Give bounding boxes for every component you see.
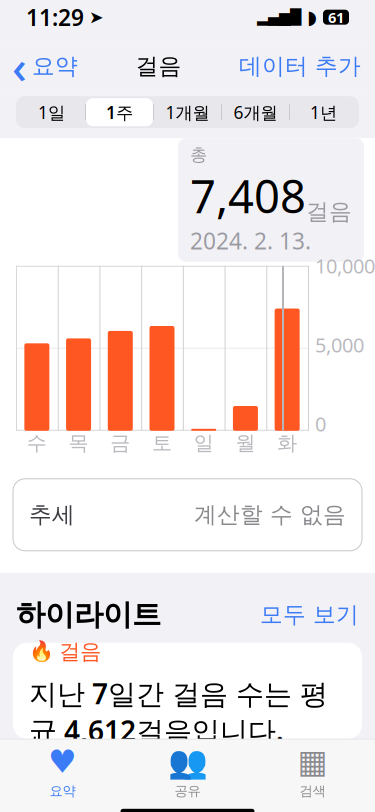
staticText: 5,000	[315, 331, 364, 358]
button[interactable]: 👥	[125, 747, 250, 795]
staticText: 요약	[49, 783, 75, 799]
staticText: 요약	[32, 52, 78, 80]
staticText: 검색	[299, 783, 325, 799]
button[interactable]: 🔥	[13, 643, 362, 739]
button[interactable]: 1주	[86, 98, 153, 126]
staticText: 👥	[167, 743, 207, 780]
staticText: 6개월	[233, 101, 277, 124]
staticText: 걸음	[135, 52, 181, 80]
staticText: 11:29	[26, 2, 84, 32]
staticText: 금	[110, 431, 130, 455]
staticText: 모두 보기	[260, 601, 359, 629]
staticText: 10,000	[315, 252, 375, 279]
staticText: 계산할 수 없음	[194, 501, 346, 529]
button[interactable]: ▦	[250, 747, 375, 795]
staticText: 추세	[29, 501, 75, 529]
button[interactable]: 모두 보기	[260, 601, 359, 629]
staticText: 2024. 2. 13.	[190, 226, 311, 256]
staticText: 1년	[310, 101, 337, 124]
staticText: 일	[194, 431, 214, 455]
button[interactable]: 1개월	[154, 98, 221, 126]
staticText: 토	[152, 431, 172, 455]
staticText: 61	[328, 7, 344, 27]
button[interactable]: ♥	[0, 747, 125, 795]
button[interactable]: 추세	[13, 479, 362, 551]
staticText: 7,408	[190, 165, 306, 226]
staticText: 수	[27, 431, 47, 455]
button[interactable]: 6개월	[222, 98, 289, 126]
button[interactable]: 1년	[290, 98, 357, 126]
staticText: 0	[315, 410, 326, 437]
staticText: ♥	[48, 743, 77, 780]
button[interactable]: 1일	[18, 98, 85, 126]
button[interactable]: 데이터 추가	[239, 46, 375, 86]
staticText: 걸음	[59, 638, 101, 665]
staticText: 1일	[38, 101, 65, 124]
button[interactable]: ‹	[0, 30, 78, 102]
staticText: 🔥	[29, 640, 54, 663]
staticText: ▂▄▆█	[257, 9, 301, 25]
staticText: ▦	[297, 743, 327, 780]
staticText: ‹	[12, 36, 27, 96]
staticText: 1주	[106, 101, 133, 124]
staticText: 총	[190, 144, 207, 165]
staticText: ◗	[307, 7, 317, 28]
staticText: 걸음	[306, 198, 352, 226]
staticText: ➤	[89, 7, 104, 27]
staticText: 하이라이트	[16, 597, 161, 633]
staticText: 화	[277, 431, 297, 455]
staticText: 데이터 추가	[239, 52, 361, 80]
staticText: 1개월	[165, 101, 209, 124]
staticText: 월	[235, 431, 255, 455]
staticText: 공유	[174, 783, 200, 799]
staticText: 목	[69, 431, 89, 455]
staticText: 지난 7일간 걸음 수는 평균 4,612걸음입니다.	[29, 675, 328, 749]
